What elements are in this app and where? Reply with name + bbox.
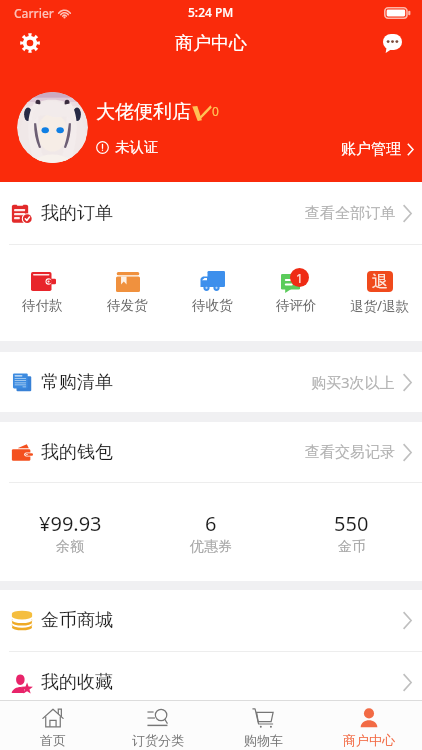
staticText: 购物车 <box>244 732 283 748</box>
staticText: 商户中心 <box>175 32 247 55</box>
staticText: 我的收藏 <box>41 671 113 694</box>
staticText: 购买3次以上 <box>311 372 395 392</box>
staticText: 余额 <box>56 538 84 556</box>
staticText: 待评价 <box>276 297 317 314</box>
button[interactable]: 我的订单 <box>0 182 422 244</box>
button[interactable]: 6 <box>140 484 281 582</box>
button[interactable]: 账户管理 <box>341 140 415 159</box>
button[interactable]: 我的收藏 <box>0 652 422 713</box>
staticText: 查看全部订单 <box>305 204 395 223</box>
button[interactable]: 1 <box>254 245 338 341</box>
staticText: 退 <box>372 272 388 292</box>
staticText: 我的钱包 <box>41 441 113 464</box>
staticText: 未认证 <box>115 138 159 156</box>
button[interactable]: 待收货 <box>170 245 254 341</box>
button[interactable]: 待付款 <box>0 245 85 341</box>
staticText: 金币商城 <box>41 609 113 632</box>
button[interactable]: 退 <box>338 245 422 341</box>
staticText: ¥99.93 <box>39 510 102 537</box>
staticText: 550 <box>334 510 369 537</box>
staticText: 查看交易记录 <box>305 443 395 462</box>
staticText: 1 <box>296 270 303 286</box>
button[interactable]: 订货分类 <box>105 701 210 750</box>
staticText: 常购清单 <box>41 371 113 394</box>
staticText: 账户管理 <box>341 140 401 159</box>
staticText: Carrier <box>14 5 54 21</box>
button[interactable]: 我的钱包 <box>0 422 422 482</box>
button[interactable]: 常购清单 <box>0 352 422 412</box>
staticText: 退货/退款 <box>350 297 410 315</box>
staticText: 我的订单 <box>41 202 113 225</box>
staticText: 金币 <box>338 538 366 556</box>
staticText: 待付款 <box>22 297 63 314</box>
button[interactable]: Messages <box>373 24 411 62</box>
staticText: 0 <box>212 103 219 119</box>
staticText: 5:24 PM <box>188 4 234 20</box>
button[interactable]: 首页 <box>0 701 105 750</box>
staticText: 首页 <box>40 732 66 748</box>
staticText: 待收货 <box>192 297 233 314</box>
staticText: 优惠券 <box>190 538 232 556</box>
button[interactable]: 商户中心 <box>316 701 422 750</box>
button[interactable]: 待发货 <box>85 245 170 341</box>
button[interactable]: Avatar <box>17 92 88 163</box>
button[interactable]: 金币商城 <box>0 590 422 651</box>
button[interactable]: Settings <box>11 24 49 62</box>
staticText: 待发货 <box>107 297 148 314</box>
staticText: 大佬便利店 <box>96 100 191 124</box>
staticText: 6 <box>205 510 217 537</box>
staticText: 商户中心 <box>343 732 395 748</box>
button[interactable]: ¥99.93 <box>0 484 140 582</box>
staticText: 订货分类 <box>132 732 184 748</box>
button[interactable]: 购物车 <box>210 701 316 750</box>
button[interactable]: 550 <box>281 484 422 582</box>
